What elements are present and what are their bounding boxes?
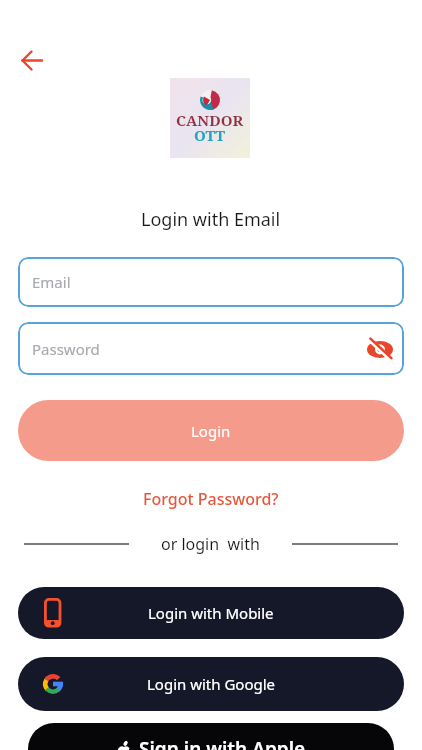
button[interactable]: [365, 334, 395, 364]
staticText: Login with Mobile: [148, 603, 274, 623]
button[interactable]: Sign in with Apple: [28, 723, 394, 750]
staticText: Password: [32, 339, 100, 359]
staticText: Login: [191, 421, 231, 441]
staticText: Email: [32, 272, 71, 292]
staticText: Login with Google: [147, 674, 276, 694]
staticText: Forgot Password?: [143, 488, 279, 510]
button[interactable]: Email: [18, 257, 404, 307]
button[interactable]: Login with Google: [18, 657, 404, 711]
staticText: CANDOR: [176, 110, 244, 130]
staticText: Sign in with Apple: [139, 736, 306, 750]
button[interactable]: [14, 43, 50, 79]
staticText: Login with Email: [141, 207, 281, 232]
staticText: OTT: [194, 125, 226, 145]
button[interactable]: Password: [18, 322, 404, 375]
button[interactable]: Forgot Password?: [143, 488, 279, 510]
staticText: or login with: [161, 533, 260, 555]
button[interactable]: Login: [18, 400, 404, 461]
button[interactable]: Login with Mobile: [18, 587, 404, 639]
